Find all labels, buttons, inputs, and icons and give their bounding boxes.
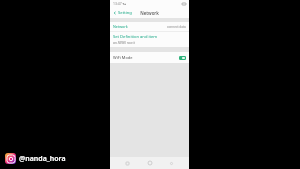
staticText: connect data bbox=[167, 25, 186, 29]
staticText: @nanda_hora bbox=[19, 154, 66, 164]
button[interactable]: WiFi Mode toggle bbox=[179, 56, 186, 60]
staticText: Set Definition and item bbox=[113, 34, 158, 40]
button[interactable]: Set Definition and item bbox=[110, 32, 189, 47]
staticText: WiFi Mode bbox=[113, 55, 133, 60]
button[interactable]: Back to Setting bbox=[110, 8, 135, 18]
staticText: Setting bbox=[118, 10, 132, 16]
staticText: wo.NEWK now it bbox=[113, 41, 136, 45]
button[interactable]: WiFi Mode bbox=[110, 52, 189, 63]
staticText: 13:47 ▾▴ bbox=[113, 1, 126, 6]
button[interactable]: Recents bbox=[124, 160, 131, 167]
staticText: Network bbox=[113, 24, 128, 29]
button[interactable]: Network bbox=[110, 22, 189, 31]
button[interactable]: Back bbox=[168, 160, 175, 167]
button[interactable]: Home bbox=[146, 159, 154, 167]
staticText: Network bbox=[140, 10, 159, 16]
